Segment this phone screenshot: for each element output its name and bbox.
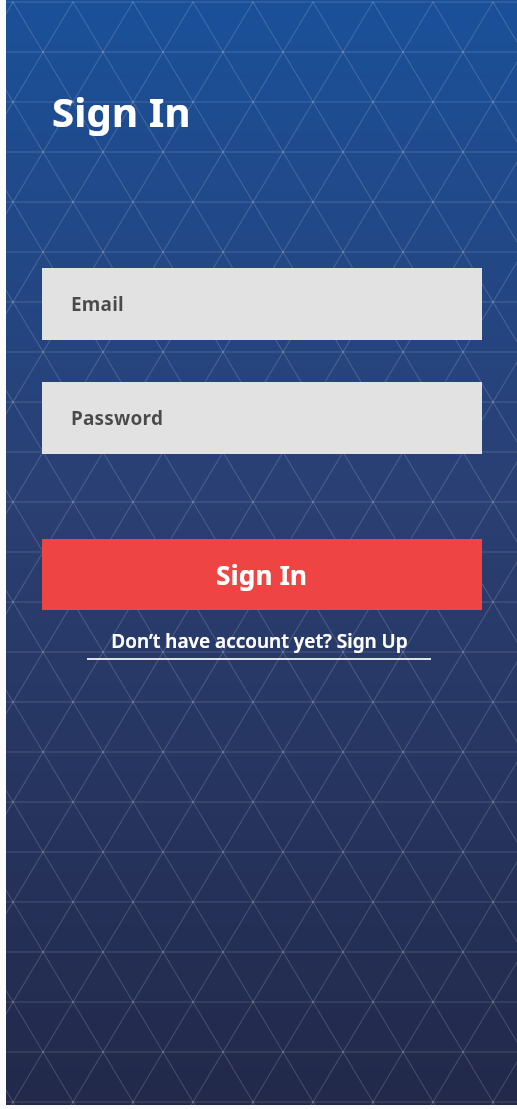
staticText: Don’t have account yet? Sign Up [111, 628, 408, 654]
button[interactable]: Email [42, 268, 482, 340]
staticText: Sign In [216, 557, 308, 592]
staticText: Password [71, 405, 164, 431]
button[interactable]: Don’t have account yet? Sign Up [0, 628, 517, 656]
staticText: Email [71, 291, 124, 317]
button[interactable]: Password [42, 382, 482, 454]
staticText: Sign In [52, 84, 191, 138]
button[interactable]: Sign In [42, 539, 482, 610]
